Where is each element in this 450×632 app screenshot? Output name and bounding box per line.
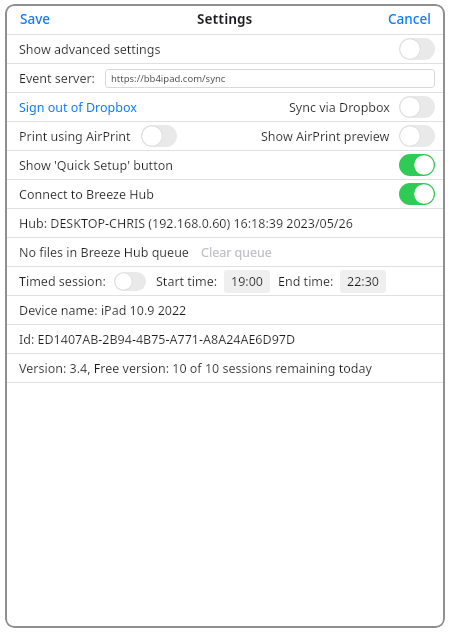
staticText: Settings [197,10,253,28]
button[interactable]: Timed session [114,272,146,291]
button[interactable]: Id: ED1407AB-2B94-4B75-A771-A8A24AE6D97D [5,325,445,353]
staticText: Device name: iPad 10.9 2022 [19,302,187,319]
staticText: 19:00 [231,273,263,290]
button[interactable]: 19:00 [224,270,270,293]
button[interactable]: Connect to Breeze Hub [399,183,435,205]
staticText: Id: ED1407AB-2B94-4B75-A771-A8A24AE6D97D [19,331,296,348]
button[interactable]: Device name: iPad 10.9 2022 [5,296,445,324]
button[interactable]: Sign out of Dropbox [5,93,445,121]
staticText: Cancel [388,10,431,28]
staticText: Start time: [156,273,218,290]
button[interactable]: Sync via Dropbox [399,96,435,118]
staticText: End time: [278,273,334,290]
staticText: Save [20,10,51,28]
button[interactable]: Hub: DESKTOP-CHRIS (192.168.0.60) 16:18:… [5,209,445,237]
button[interactable]: Version: 3.4, Free version: 10 of 10 ses… [5,354,445,382]
staticText: Show AirPrint preview [261,128,390,145]
button[interactable]: Timed session: [5,267,445,295]
button[interactable]: Save [5,6,66,32]
staticText: Print using AirPrint [19,128,131,145]
staticText: Connect to Breeze Hub [19,186,154,203]
staticText: https://bb4ipad.com/sync [111,72,226,85]
button[interactable]: Print using AirPrint [141,125,177,147]
button[interactable]: Clear queue [201,244,272,261]
button[interactable]: Show advanced settings [399,38,435,60]
staticText: Show advanced settings [19,41,161,58]
staticText: No files in Breeze Hub queue [19,244,189,261]
button[interactable]: Cancel [374,6,445,32]
staticText: Event server: [19,70,95,87]
button[interactable]: Show Quick Setup button [399,154,435,176]
button[interactable]: Event server: [5,64,445,92]
staticText: 22:30 [347,273,379,290]
button[interactable]: Sign out of Dropbox [19,99,137,116]
button[interactable]: 22:30 [340,270,386,293]
button[interactable]: Show AirPrint preview [399,125,435,147]
staticText: Show 'Quick Setup' button [19,157,173,174]
button[interactable]: No files in Breeze Hub queue [5,238,445,266]
button[interactable]: Show advanced settings [5,35,445,63]
button[interactable]: https://bb4ipad.com/sync [105,69,435,88]
staticText: Sync via Dropbox [289,99,390,116]
staticText: Version: 3.4, Free version: 10 of 10 ses… [19,360,372,377]
button[interactable]: Show 'Quick Setup' button [5,151,445,179]
staticText: Hub: DESKTOP-CHRIS (192.168.0.60) 16:18:… [19,215,353,232]
button[interactable]: Connect to Breeze Hub [5,180,445,208]
staticText: Clear queue [201,244,272,261]
button[interactable]: Print using AirPrint [5,122,445,150]
staticText: Timed session: [19,273,106,290]
staticText: Sign out of Dropbox [19,99,137,116]
